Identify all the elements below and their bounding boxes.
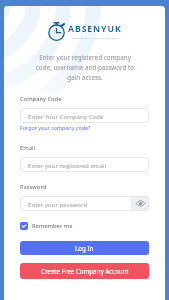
staticText: Forgot your company code? [20,124,91,131]
staticText: Enter your password [28,200,88,208]
staticText: Enter your registered company code, user… [34,53,136,82]
staticText: Log In [75,244,94,252]
button[interactable]: Show password [131,196,149,211]
staticText: ABSENYUK [68,23,122,35]
staticText: Enter Your Company Code [28,112,104,120]
staticText: Company Code [20,95,62,103]
staticText: Create Free Company Account [41,267,129,275]
button[interactable]: Forgot your company code? [20,124,149,131]
staticText: Enter your registered email [28,161,107,169]
button[interactable]: Enter Your Company Code [20,108,149,123]
button[interactable]: Remember me [20,222,149,230]
button[interactable]: Create Free Company Account [20,263,149,279]
staticText: Password [20,183,47,191]
button[interactable]: Log In [20,241,149,255]
staticText: AFFORDABLE AND APPLICABLE [72,36,118,39]
button[interactable]: Enter your registered email [20,157,149,172]
staticText: Remember me [32,222,73,230]
button[interactable]: Enter your password [20,196,149,211]
staticText: Email [20,144,35,152]
